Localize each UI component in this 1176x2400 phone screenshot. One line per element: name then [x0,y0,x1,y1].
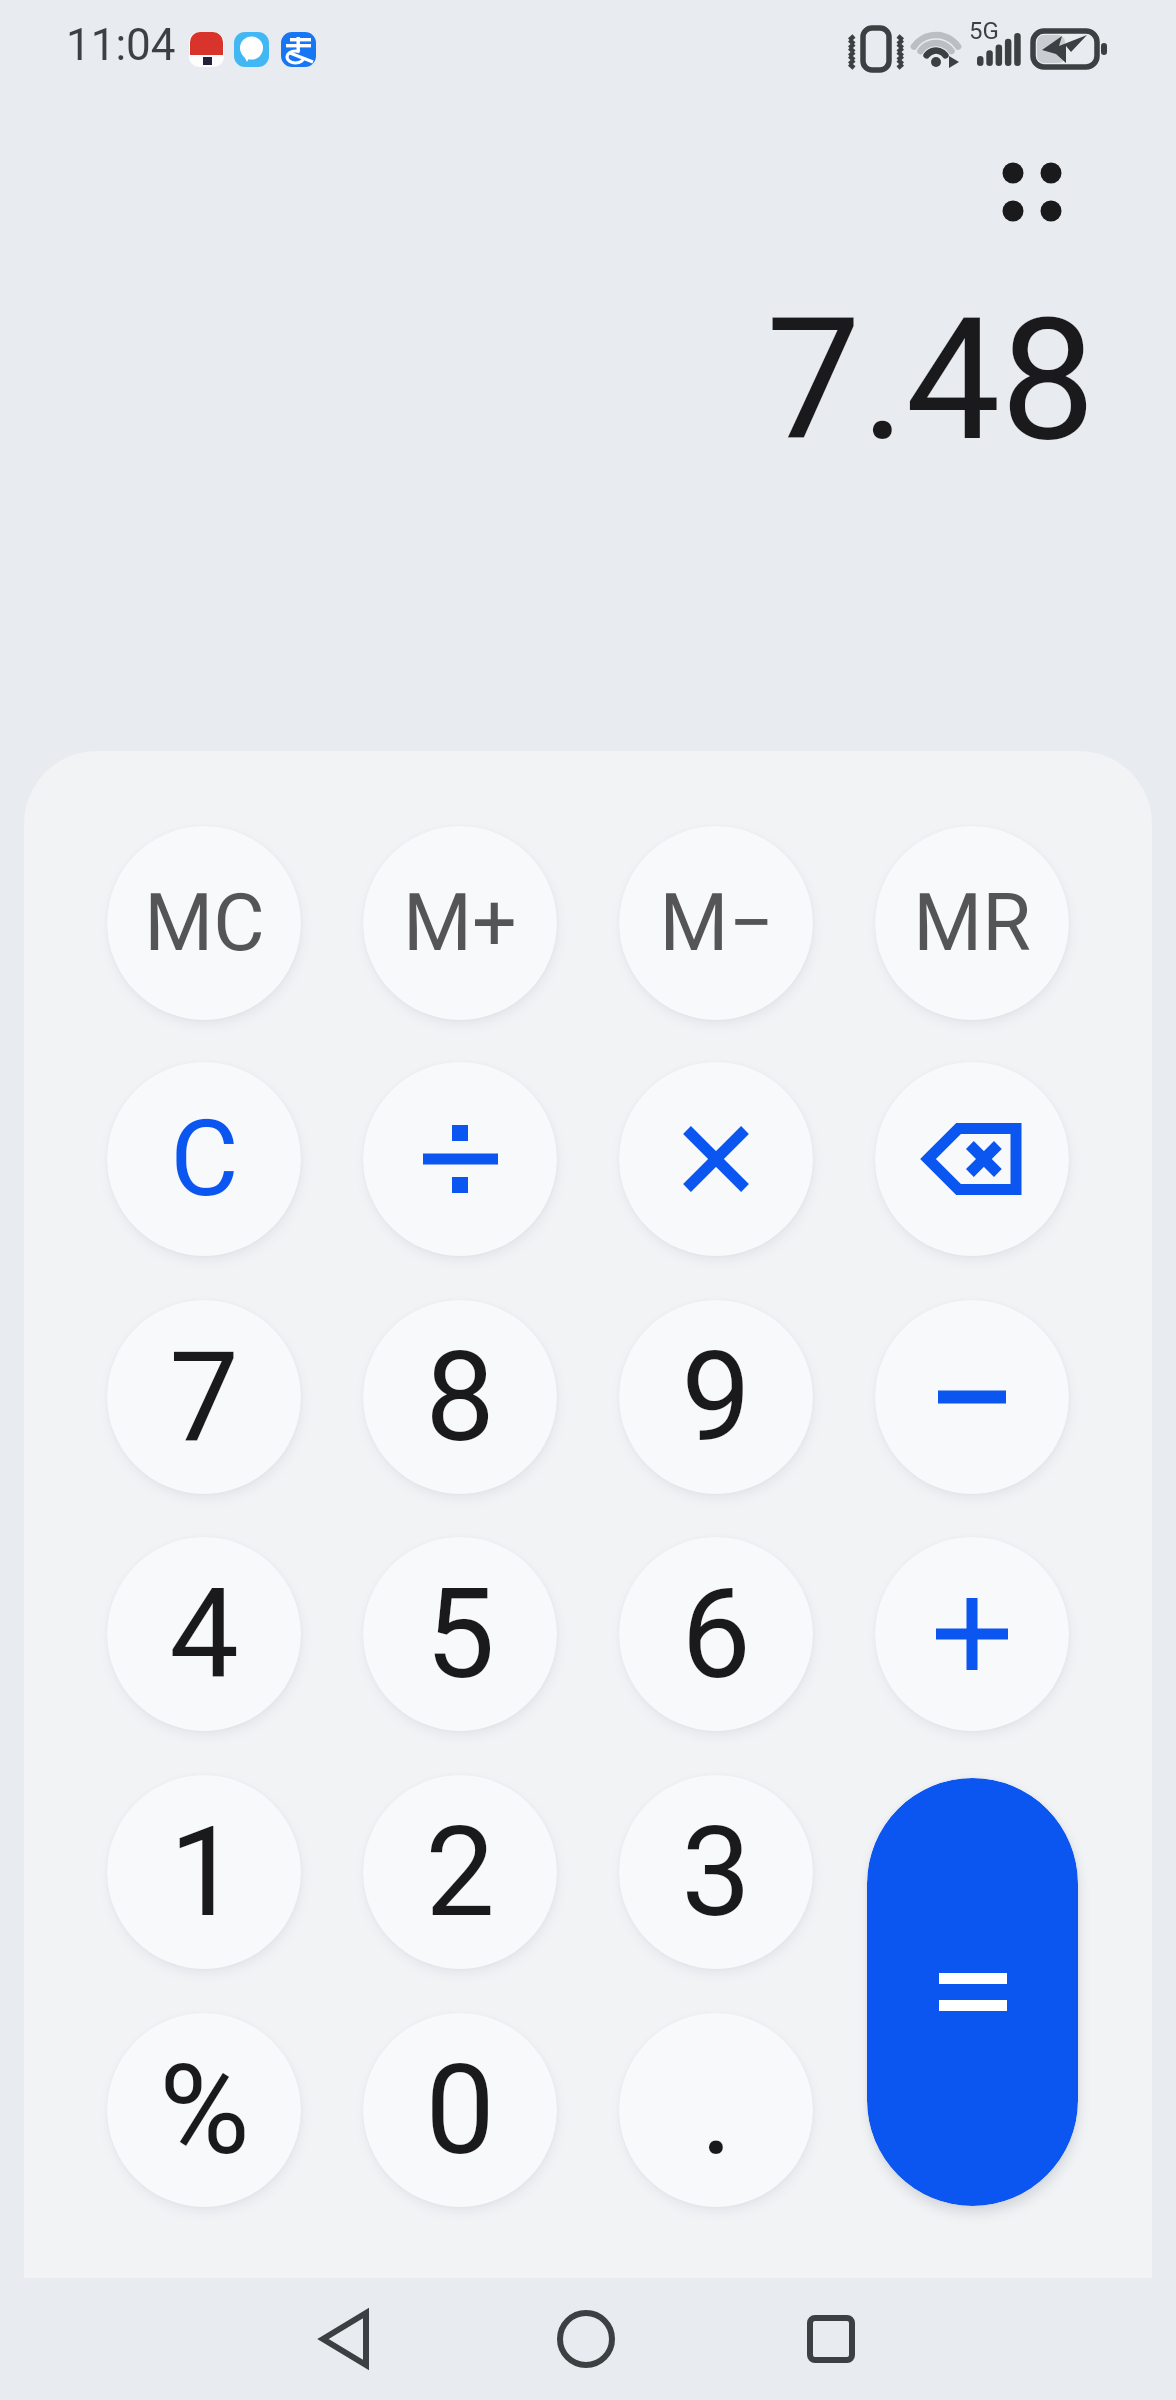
button[interactable]: C [107,1062,301,1256]
staticText: 7.48 [766,281,1096,479]
button[interactable]: 0 [363,2013,557,2207]
staticText: 6 [681,1562,751,1707]
button[interactable]: 2 [363,1775,557,1969]
button[interactable]: MC [107,826,301,1020]
staticText: M+ [403,877,517,970]
staticText: 5G [969,17,999,45]
button[interactable]: More options [975,134,1090,249]
button[interactable]: 5 [363,1537,557,1731]
button[interactable]: Back [283,2278,405,2400]
button[interactable]: . [619,2013,813,2207]
button[interactable]: 4 [107,1537,301,1731]
staticText: C [170,1098,239,1221]
staticText: 9 [681,1325,751,1470]
button[interactable]: % [107,2013,301,2207]
staticText: 0 [425,2038,495,2183]
staticText: MC [144,877,265,970]
button[interactable]: 9 [619,1300,813,1494]
staticText: 7 [169,1325,239,1470]
button[interactable]: back [875,1062,1069,1256]
button[interactable]: M+ [363,826,557,1020]
button[interactable]: M− [619,826,813,1020]
button[interactable]: Equals [867,1778,1078,2206]
staticText: 3 [681,1800,751,1945]
staticText: 4 [169,1562,239,1707]
button[interactable]: 8 [363,1300,557,1494]
staticText: 1 [169,1800,239,1945]
button[interactable]: 3 [619,1775,813,1969]
button[interactable]: 1 [107,1775,301,1969]
staticText: 2 [425,1800,495,1945]
button[interactable]: Recents [770,2278,892,2400]
staticText: % [159,2038,250,2183]
button[interactable]: Home [525,2278,647,2400]
staticText: M− [659,877,774,970]
button[interactable]: div [363,1062,557,1256]
button[interactable]: plus [875,1537,1069,1731]
button[interactable]: MR [875,826,1069,1020]
staticText: . [700,2038,733,2183]
button[interactable]: mul [619,1062,813,1256]
button[interactable]: minus [875,1300,1069,1494]
staticText: 8 [425,1325,495,1470]
button[interactable]: 6 [619,1537,813,1731]
button[interactable]: 7 [107,1300,301,1494]
staticText: 11:04 [66,19,176,71]
staticText: 5 [425,1562,495,1707]
staticText: MR [913,877,1031,970]
